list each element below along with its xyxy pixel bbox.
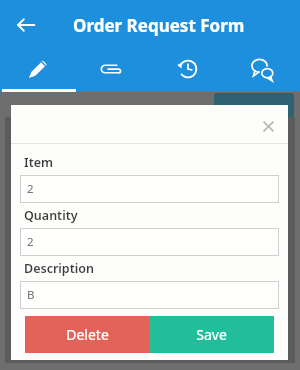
- button[interactable]: Attachments: [75, 50, 150, 88]
- staticText: Item: [24, 154, 54, 171]
- staticText: Order Request Form: [73, 14, 245, 37]
- staticText: Delete: [66, 325, 109, 344]
- button[interactable]: Close: [255, 113, 281, 139]
- staticText: Save: [196, 325, 227, 344]
- staticText: Quantity: [24, 207, 78, 224]
- button[interactable]: Edit: [0, 50, 75, 88]
- button[interactable]: Save: [149, 316, 274, 353]
- button[interactable]: Delete: [25, 316, 149, 353]
- staticText: Description: [24, 260, 94, 277]
- staticText: B: [27, 287, 35, 303]
- button[interactable]: Back: [9, 8, 43, 42]
- staticText: 2: [27, 181, 34, 197]
- button[interactable]: Comments: [225, 50, 300, 88]
- button[interactable]: History: [150, 50, 225, 88]
- staticText: 2: [27, 234, 34, 250]
